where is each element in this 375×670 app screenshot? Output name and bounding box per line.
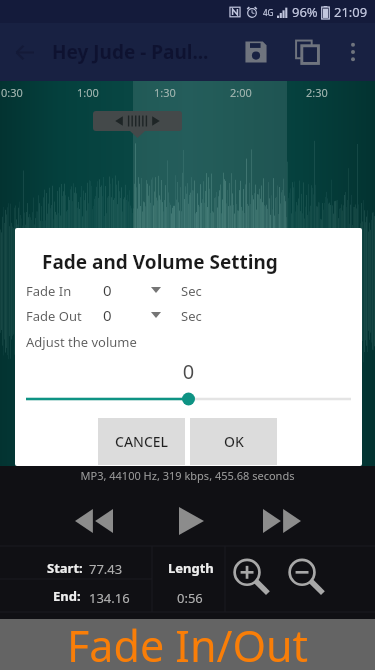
staticText: Hey Jude - Paul... bbox=[52, 39, 209, 65]
button[interactable]: Copy bbox=[283, 28, 331, 76]
staticText: Adjust the volume bbox=[26, 333, 137, 351]
staticText: 0 bbox=[15, 358, 362, 385]
staticText: 134.16 bbox=[89, 589, 130, 607]
staticText: 2:30 bbox=[306, 85, 328, 100]
button[interactable]: Selection start handle bbox=[93, 111, 182, 131]
button[interactable]: Rewind bbox=[65, 492, 123, 550]
button[interactable]: Play bbox=[162, 492, 220, 550]
button[interactable]: OK bbox=[190, 418, 277, 465]
button[interactable]: Save bbox=[232, 28, 280, 76]
staticText: 77.43 bbox=[89, 560, 123, 578]
staticText: Fade In/Out bbox=[67, 616, 309, 667]
staticText: 1:00 bbox=[77, 85, 99, 100]
staticText: Fade In bbox=[26, 282, 72, 300]
button[interactable]: CANCEL bbox=[98, 418, 185, 465]
staticText: End: bbox=[53, 587, 81, 605]
staticText: Fade and Volume Setting bbox=[42, 249, 278, 275]
staticText: Length bbox=[168, 559, 214, 577]
staticText: 0:56 bbox=[177, 589, 203, 607]
button[interactable]: Fade Out bbox=[15, 303, 362, 327]
staticText: 2:00 bbox=[230, 85, 252, 100]
staticText: 96% bbox=[292, 3, 318, 21]
button[interactable]: Zoom in bbox=[228, 554, 274, 600]
staticText: 0 bbox=[103, 305, 112, 325]
staticText: 0:30 bbox=[1, 85, 23, 100]
staticText: CANCEL bbox=[115, 432, 169, 451]
staticText: Fade Out bbox=[26, 307, 82, 325]
staticText: 0 bbox=[103, 280, 112, 300]
button[interactable]: Volume slider bbox=[15, 391, 362, 407]
button[interactable]: Fade In bbox=[15, 278, 362, 302]
button[interactable]: Fast forward bbox=[253, 492, 311, 550]
button[interactable]: Fade In/Out bbox=[0, 619, 375, 670]
staticText: 4G bbox=[263, 7, 274, 18]
staticText: OK bbox=[224, 432, 244, 451]
staticText: MP3, 44100 Hz, 319 kbps, 455.68 seconds bbox=[0, 468, 375, 483]
staticText: Sec bbox=[181, 307, 202, 325]
staticText: 21:09 bbox=[334, 3, 368, 21]
staticText: 1:30 bbox=[154, 85, 176, 100]
staticText: Sec bbox=[181, 282, 202, 300]
staticText: Start: bbox=[47, 559, 83, 577]
button[interactable]: More options bbox=[331, 30, 375, 74]
button[interactable]: Zoom out bbox=[283, 554, 329, 600]
